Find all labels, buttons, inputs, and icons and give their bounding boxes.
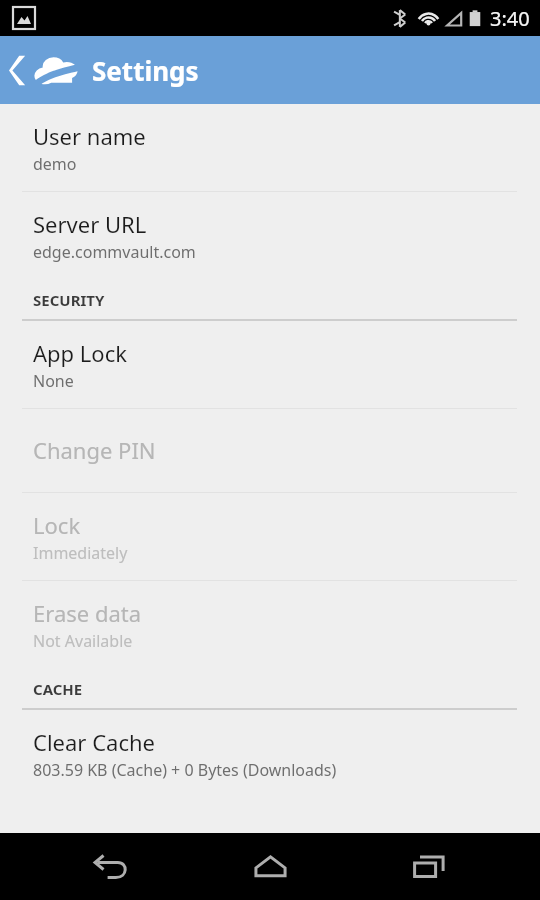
button[interactable]: Change PIN (0, 409, 540, 492)
staticText: edge.commvault.com (33, 241, 196, 263)
button[interactable]: Navigate up (0, 36, 83, 104)
button[interactable]: Server URL (0, 192, 540, 279)
button[interactable]: App Lock (0, 321, 540, 408)
button[interactable]: Recent apps (381, 833, 477, 900)
staticText: Immediately (33, 542, 128, 564)
staticText: 803.59 KB (Cache) + 0 Bytes (Downloads) (33, 759, 337, 781)
button[interactable]: Back (63, 833, 159, 900)
staticText: Server URL (33, 209, 147, 239)
button[interactable]: Lock (0, 493, 540, 580)
staticText: App Lock (33, 338, 127, 368)
staticText: CACHE (33, 679, 83, 699)
staticText: demo (33, 153, 77, 175)
button[interactable]: Erase data (0, 581, 540, 668)
staticText: Settings (92, 53, 199, 88)
button[interactable]: Clear Cache (0, 710, 540, 797)
staticText: Erase data (33, 598, 142, 628)
staticText: User name (33, 121, 146, 151)
button[interactable]: Home (222, 833, 318, 900)
staticText: SECURITY (33, 290, 105, 310)
staticText: 3:40 (490, 5, 530, 32)
staticText: Change PIN (33, 435, 156, 465)
staticText: Clear Cache (33, 727, 155, 757)
button[interactable]: User name (0, 104, 540, 191)
staticText: Not Available (33, 630, 133, 652)
staticText: Lock (33, 510, 81, 540)
staticText: None (33, 370, 74, 392)
